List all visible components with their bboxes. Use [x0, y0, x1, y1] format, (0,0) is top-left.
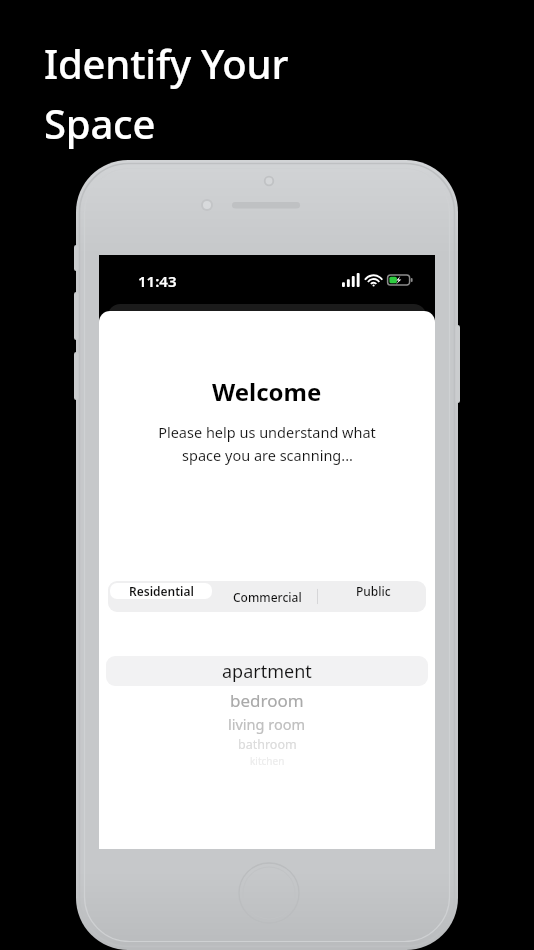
staticText: bathroom [238, 736, 297, 753]
staticText: Commercial [233, 589, 302, 605]
button[interactable]: Commercial [216, 583, 318, 610]
staticText: kitchen [250, 754, 285, 768]
button[interactable]: Public [322, 583, 424, 599]
button[interactable]: bedroom [106, 689, 428, 712]
button[interactable]: bathroom [106, 736, 428, 753]
staticText: Residential [129, 583, 194, 599]
button[interactable]: apartment [106, 656, 428, 686]
staticText: bedroom [230, 689, 304, 712]
staticText: Welcome [212, 375, 322, 408]
staticText: Please help us understand what [158, 422, 376, 442]
staticText: Identify Your [44, 36, 289, 90]
staticText: Public [356, 583, 391, 599]
button[interactable]: living room [106, 714, 428, 734]
staticText: Space [44, 96, 156, 150]
staticText: space you are scanning... [182, 445, 353, 465]
staticText: apartment [222, 659, 312, 684]
button[interactable]: Residential [110, 583, 212, 599]
staticText: 11:43 [138, 271, 177, 291]
staticText: living room [228, 714, 306, 734]
